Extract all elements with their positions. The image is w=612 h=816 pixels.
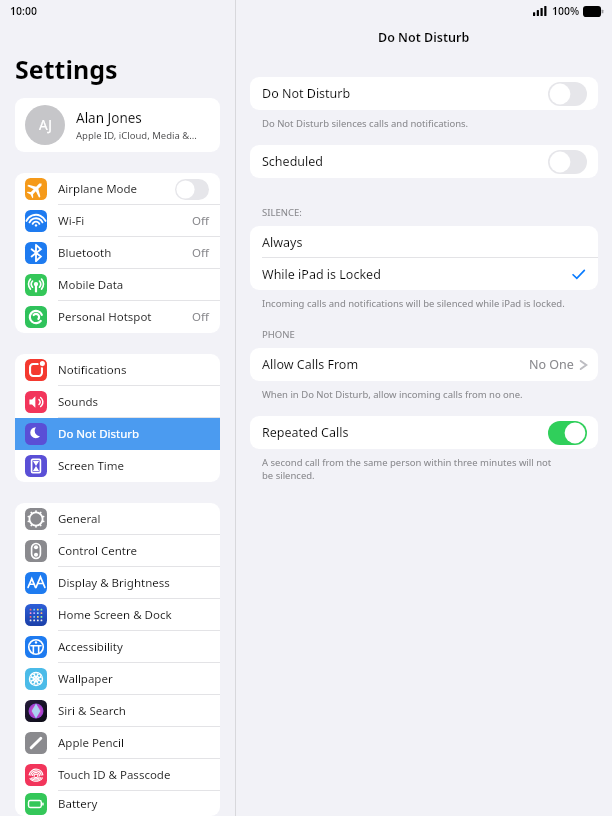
staticText: Apple Pencil — [58, 735, 124, 751]
staticText: While iPad is Locked — [262, 266, 381, 283]
button[interactable]: Airplane Mode — [15, 173, 220, 205]
staticText: Airplane Mode — [58, 181, 138, 197]
staticText: A second call from the same person withi… — [262, 456, 552, 482]
staticText: AJ — [39, 116, 52, 134]
button[interactable]: Notifications — [15, 354, 220, 386]
staticText: Apple ID, iCloud, Media &... — [76, 129, 197, 142]
button[interactable]: Airplane Mode toggle — [175, 179, 209, 200]
staticText: 10:00 — [10, 4, 37, 18]
staticText: Display & Brightness — [58, 575, 170, 591]
button[interactable]: Allow Calls From — [250, 348, 598, 381]
staticText: Do Not Disturb — [262, 85, 351, 102]
staticText: Personal Hotspot — [58, 309, 152, 325]
staticText: Screen Time — [58, 458, 125, 474]
button[interactable]: Screen Time — [15, 450, 220, 482]
staticText: Settings — [15, 52, 118, 86]
button[interactable]: Control Centre — [15, 535, 220, 567]
button[interactable]: Do Not Disturb — [15, 418, 220, 450]
button[interactable]: Battery — [15, 791, 220, 816]
staticText: SILENCE: — [262, 206, 302, 219]
staticText: Bluetooth — [58, 245, 112, 261]
button[interactable]: Wallpaper — [15, 663, 220, 695]
staticText: Wi-Fi — [58, 213, 85, 229]
button[interactable]: Home Screen & Dock — [15, 599, 220, 631]
staticText: Always — [262, 234, 303, 251]
staticText: Off — [192, 309, 209, 325]
staticText: Do Not Disturb — [58, 426, 140, 442]
staticText: Mobile Data — [58, 277, 124, 293]
staticText: Scheduled — [262, 153, 324, 170]
button[interactable]: Do Not Disturb — [250, 77, 598, 110]
staticText: Incoming calls and notifications will be… — [262, 297, 565, 310]
staticText: Do Not Disturb silences calls and notifi… — [262, 117, 469, 130]
button[interactable]: AJ — [15, 98, 220, 152]
staticText: Home Screen & Dock — [58, 607, 172, 623]
button[interactable]: Display & Brightness — [15, 567, 220, 599]
button[interactable]: Accessibility — [15, 631, 220, 663]
staticText: When in Do Not Disturb, allow incoming c… — [262, 388, 523, 401]
button[interactable]: Wi-Fi — [15, 205, 220, 237]
button[interactable]: Sounds — [15, 386, 220, 418]
button[interactable]: Toggle on — [548, 421, 587, 445]
staticText: Alan Jones — [76, 109, 142, 127]
staticText: Battery — [58, 796, 98, 812]
staticText: No One — [529, 356, 574, 373]
staticText: Do Not Disturb — [378, 29, 470, 46]
staticText: PHONE — [262, 328, 295, 341]
button[interactable]: Apple Pencil — [15, 727, 220, 759]
staticText: Repeated Calls — [262, 424, 349, 441]
button[interactable]: Siri & Search — [15, 695, 220, 727]
staticText: 100% — [552, 4, 580, 18]
button[interactable]: Personal Hotspot — [15, 301, 220, 333]
staticText: Wallpaper — [58, 671, 113, 687]
button[interactable]: Toggle off — [548, 82, 587, 106]
button[interactable]: Bluetooth — [15, 237, 220, 269]
staticText: Accessibility — [58, 639, 123, 655]
button[interactable]: Scheduled — [250, 145, 598, 178]
button[interactable]: Toggle off — [548, 150, 587, 174]
button[interactable]: While iPad is Locked — [250, 258, 598, 290]
staticText: Allow Calls From — [262, 356, 359, 373]
staticText: Sounds — [58, 394, 99, 410]
staticText: Off — [192, 213, 209, 229]
button[interactable]: General — [15, 503, 220, 535]
staticText: Notifications — [58, 362, 127, 378]
button[interactable]: Touch ID & Passcode — [15, 759, 220, 791]
staticText: Off — [192, 245, 209, 261]
button[interactable]: Always — [250, 226, 598, 258]
staticText: Control Centre — [58, 543, 137, 559]
staticText: General — [58, 511, 101, 527]
button[interactable]: Mobile Data — [15, 269, 220, 301]
staticText: Touch ID & Passcode — [58, 767, 171, 783]
button[interactable]: Repeated Calls — [250, 416, 598, 449]
staticText: Siri & Search — [58, 703, 126, 719]
